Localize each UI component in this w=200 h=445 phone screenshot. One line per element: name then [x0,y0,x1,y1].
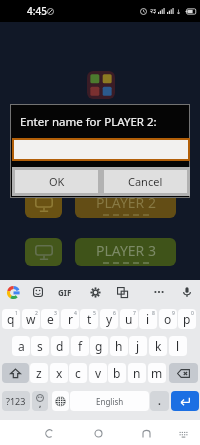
button[interactable]: z [30,363,48,383]
staticText: h [115,338,123,354]
staticText: q [7,311,15,327]
button[interactable]: Home [87,422,109,444]
staticText: i [146,311,150,327]
staticText: 4:45 [27,4,47,18]
button[interactable]: English [70,391,149,411]
button[interactable]: Computer player [25,190,62,218]
staticText: a [18,338,25,354]
staticText: . [158,394,161,408]
staticText: 5 [93,310,96,317]
staticText: d [56,338,64,354]
staticText: n [133,365,141,381]
button[interactable]: PLAYER 3 [75,238,176,266]
button[interactable]: GIF [55,282,75,302]
staticText: PLAYER 2 [96,193,156,212]
button[interactable]: f [71,336,89,356]
staticText: 7 [133,310,136,317]
button[interactable]: o [159,309,177,329]
button[interactable]: t [80,309,98,329]
button[interactable]: a [12,336,30,356]
staticText: e [47,311,54,327]
staticText: y [106,311,113,327]
button[interactable]: j [129,336,147,356]
staticText: Cancel [128,174,163,189]
button[interactable]: OK [15,170,98,193]
staticText: 4 [74,310,77,317]
staticText: 9 [172,310,175,317]
button[interactable]: c [69,363,87,383]
staticText: PLAYER 3 [96,241,156,260]
staticText: GIF [58,287,72,298]
staticText: g [95,338,103,354]
staticText: b [113,365,121,381]
staticText: English [96,396,124,407]
staticText: o [164,311,172,327]
button[interactable]: Settings [85,282,105,302]
button[interactable]: PLAYER 2 [75,190,176,218]
button[interactable]: s [31,336,49,356]
staticText: c [75,365,81,381]
button[interactable]: Search [3,282,23,302]
button[interactable]: u [120,309,138,329]
staticText: j [136,338,140,354]
staticText: , [39,398,42,409]
staticText: u [125,311,133,327]
button[interactable]: v [89,363,107,383]
staticText: t [87,311,92,327]
button[interactable]: Language [52,391,69,411]
button[interactable]: More [149,282,169,302]
button[interactable]: Shift [2,363,29,383]
staticText: २३ [150,7,157,15]
button[interactable]: r [61,309,79,329]
button[interactable]: ?123 [2,391,30,411]
staticText: Enter name for PLAYER 2: [20,114,157,130]
staticText: p [183,311,191,327]
staticText: f [78,338,83,354]
button[interactable]: Recent apps [135,422,157,444]
button[interactable]: g [90,336,108,356]
button[interactable]: Backspace [169,363,198,383]
button[interactable]: p [178,309,196,329]
staticText: v [95,365,102,381]
button[interactable]: x [50,363,68,383]
button[interactable]: Cancel [104,170,187,193]
button[interactable]: Translate [112,282,132,302]
button[interactable]: e [41,309,59,329]
button[interactable]: w [22,309,40,329]
button[interactable]: m [148,363,166,383]
staticText: l [176,338,180,354]
staticText: s [37,338,43,354]
button[interactable]: Voice input [177,282,197,302]
staticText: 1 [15,310,18,317]
button[interactable]: h [110,336,128,356]
staticText: 6 [113,310,116,317]
staticText: r [68,311,73,327]
button[interactable]: n [128,363,146,383]
button[interactable]: Emoji [32,391,48,411]
button[interactable]: Enter [171,391,199,411]
button[interactable]: l [169,336,187,356]
staticText: 8 [152,310,155,317]
button[interactable]: k [149,336,167,356]
staticText: z [36,365,42,381]
staticText: w [26,311,36,327]
button[interactable]: d [51,336,69,356]
staticText: ↓ [176,8,182,15]
staticText: OK [49,174,65,189]
button[interactable]: Hide keyboard [172,422,194,444]
button[interactable]: i [139,309,157,329]
staticText: x [56,365,63,381]
button[interactable]: . [150,391,169,411]
button[interactable]: Stickers [28,282,48,302]
button[interactable]: Back [38,422,60,444]
button[interactable]: b [108,363,126,383]
staticText: k [155,338,162,354]
staticText: 0 [191,310,194,317]
button[interactable]: y [100,309,118,329]
staticText: 2 [35,310,38,317]
staticText: ?123 [6,395,26,407]
staticText: 3 [54,310,57,317]
button[interactable]: Computer player [25,238,62,266]
button[interactable]: q [2,309,20,329]
